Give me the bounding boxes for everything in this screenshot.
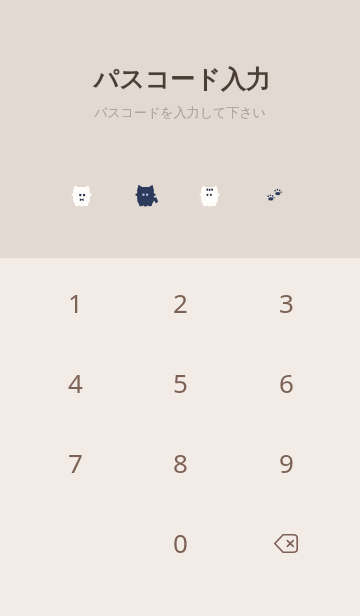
button[interactable]: 9: [241, 428, 331, 496]
button[interactable]: 1: [30, 268, 120, 336]
staticText: 7: [68, 445, 83, 480]
staticText: パスコードを入力して下さい: [94, 104, 266, 120]
staticText: 3: [279, 285, 294, 320]
staticText: 0: [173, 525, 188, 560]
button[interactable]: Backspace: [241, 509, 331, 577]
button[interactable]: 6: [241, 348, 331, 416]
button[interactable]: 4: [30, 348, 120, 416]
staticText: 6: [279, 365, 294, 400]
staticText: 9: [279, 445, 294, 480]
staticText: 4: [68, 365, 83, 400]
staticText: 8: [173, 445, 188, 480]
button[interactable]: 2: [135, 268, 225, 336]
button[interactable]: 7: [30, 428, 120, 496]
staticText: パスコード入力: [93, 64, 271, 95]
button[interactable]: 5: [135, 348, 225, 416]
staticText: 5: [173, 365, 188, 400]
staticText: 1: [68, 285, 83, 320]
button[interactable]: 0: [135, 508, 225, 576]
staticText: 2: [173, 285, 188, 320]
button[interactable]: 3: [241, 268, 331, 336]
button[interactable]: 8: [135, 428, 225, 496]
